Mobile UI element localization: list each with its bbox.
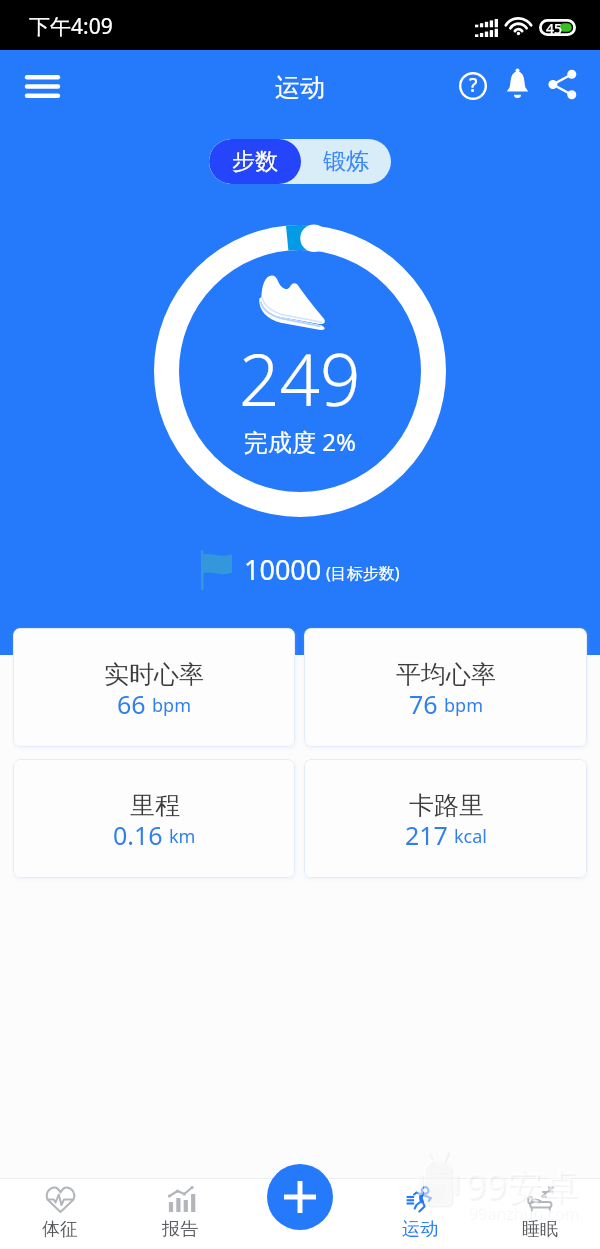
button[interactable]: 实时心率 — [13, 628, 295, 747]
staticText: 完成度 2% — [244, 425, 356, 458]
button[interactable]: Help — [449, 62, 497, 110]
button[interactable]: 报告 — [120, 1178, 240, 1249]
staticText: 10000 — [244, 551, 322, 588]
button[interactable]: 卡路里 — [304, 759, 587, 878]
staticText: 66 — [117, 687, 146, 721]
staticText: 运动 — [402, 1218, 438, 1241]
staticText: 249 — [239, 330, 361, 427]
staticText: bpm — [444, 693, 483, 718]
staticText: bpm — [152, 693, 191, 718]
button[interactable]: Add — [267, 1164, 333, 1230]
button[interactable]: 锻炼 — [301, 139, 391, 184]
button[interactable]: 里程 — [13, 759, 295, 878]
staticText: km — [169, 824, 196, 849]
staticText: 平均心率 — [396, 659, 496, 690]
staticText: 报告 — [162, 1218, 198, 1241]
staticText: (目标步数) — [326, 562, 400, 584]
staticText: kcal — [454, 824, 487, 849]
button[interactable]: Notifications — [493, 59, 541, 107]
button[interactable]: 睡眠 — [480, 1178, 600, 1249]
staticText: ? — [469, 72, 478, 98]
staticText: 实时心率 — [104, 659, 204, 690]
button[interactable]: Menu — [13, 57, 72, 116]
staticText: 45 — [546, 19, 563, 36]
button[interactable]: 步数 — [209, 139, 301, 184]
staticText: 99anzhuo.com — [469, 1203, 580, 1225]
staticText: 步数 — [232, 147, 278, 176]
staticText: 99anzhuo.com — [468, 1202, 579, 1224]
staticText: 99安卓 — [467, 1163, 581, 1212]
staticText: 217 — [405, 818, 448, 852]
staticText: 99安卓 — [465, 1161, 579, 1210]
button[interactable]: 体征 — [0, 1178, 120, 1249]
button[interactable]: 平均心率 — [304, 628, 587, 747]
staticText: 0.16 — [113, 818, 163, 852]
staticText: 运动 — [275, 72, 325, 103]
button[interactable]: Share — [538, 60, 586, 108]
button[interactable]: 运动 — [360, 1178, 480, 1249]
staticText: 体征 — [42, 1218, 78, 1241]
staticText: 锻炼 — [323, 147, 369, 176]
staticText: 睡眠 — [522, 1218, 558, 1241]
staticText: 卡路里 — [409, 790, 484, 821]
staticText: 76 — [409, 687, 438, 721]
staticText: 下午4:09 — [29, 12, 113, 41]
staticText: 里程 — [130, 790, 180, 821]
